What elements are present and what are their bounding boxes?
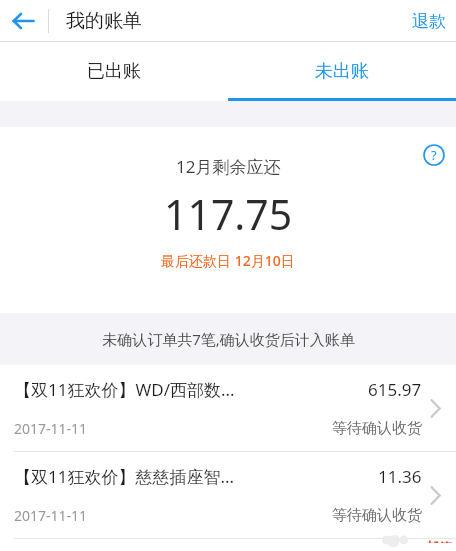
staticText: 最后还款日 12月10日 <box>161 251 295 270</box>
staticText: 615.97 <box>368 378 422 401</box>
staticText: 未确认订单共7笔,确认收货后计入账单 <box>102 329 355 349</box>
button[interactable]: 【双11狂欢价】慈慈插座智... <box>0 452 456 538</box>
staticText: 退款 <box>412 11 446 32</box>
staticText: 等待确认收货 <box>332 419 422 438</box>
button[interactable]: 已出账 <box>0 42 228 101</box>
staticText: 2017-11-11 <box>14 419 88 438</box>
staticText: 未出账 <box>315 60 369 83</box>
staticText: 我的账单 <box>66 9 142 33</box>
button[interactable]: Help <box>423 144 445 166</box>
staticText: 等待确认收货 <box>332 506 422 525</box>
button[interactable]: 未出账 <box>228 42 456 101</box>
staticText: 11.36 <box>378 465 422 488</box>
staticText: 【双11狂欢价】慈慈插座智... <box>14 465 235 488</box>
staticText: 2017-11-11 <box>14 506 88 525</box>
button[interactable]: 退款 <box>402 3 456 40</box>
staticText: 117.75 <box>164 186 293 242</box>
staticText: 【双11狂欢价】WD/西部数... <box>14 378 235 401</box>
button[interactable]: 【双11狂欢价】WD/西部数... <box>0 365 456 451</box>
button[interactable]: Back <box>0 0 46 42</box>
staticText: ? <box>431 146 437 164</box>
staticText: 已出账 <box>87 60 141 83</box>
staticText: 邮箱 <box>426 539 452 543</box>
staticText: 12月剩余应还 <box>176 155 281 178</box>
